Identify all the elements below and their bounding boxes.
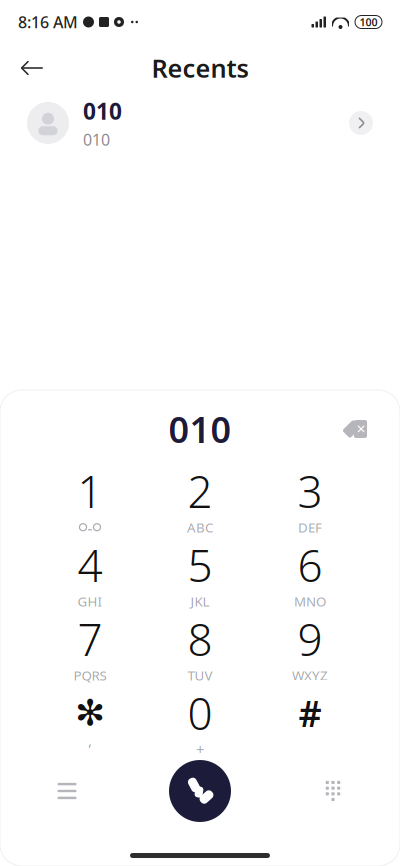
button[interactable]: 5 — [145, 534, 255, 608]
button[interactable]: 1 — [35, 460, 145, 534]
staticText: ABC — [187, 518, 213, 536]
button[interactable]: 4 — [35, 534, 145, 608]
staticText: 4 — [77, 536, 102, 594]
button[interactable]: 9 — [255, 608, 365, 682]
staticText: 6 — [297, 536, 322, 594]
staticText: 100 — [359, 15, 377, 29]
button[interactable]: 3 — [255, 460, 365, 534]
staticText: 010 — [83, 129, 110, 150]
staticText: # — [298, 689, 321, 737]
staticText: GHI — [77, 592, 102, 610]
staticText: ✻ — [75, 693, 105, 733]
staticText: TUV — [187, 666, 212, 684]
staticText: 9 — [297, 610, 322, 668]
button[interactable]: 6 — [255, 534, 365, 608]
staticText: + — [196, 739, 204, 759]
button[interactable]: Delete — [336, 409, 380, 449]
button[interactable]: # — [255, 682, 365, 756]
staticText: JKL — [190, 592, 209, 610]
staticText: PQRS — [73, 666, 106, 684]
staticText: 1 — [77, 462, 102, 520]
staticText: 010 — [83, 96, 122, 126]
staticText: WXYZ — [292, 666, 328, 684]
staticText: 0 — [187, 684, 212, 742]
button[interactable]: Back — [10, 46, 54, 90]
staticText: 5 — [187, 536, 212, 594]
staticText: 8:16 AM — [18, 11, 78, 33]
staticText: , — [88, 731, 92, 750]
button[interactable]: Call — [167, 758, 233, 824]
button[interactable]: Call log options — [32, 758, 102, 824]
staticText: MNO — [294, 592, 326, 610]
button[interactable]: 2 — [145, 460, 255, 534]
staticText: DEF — [298, 518, 322, 536]
staticText: ✕ — [356, 422, 366, 436]
staticText: 7 — [77, 610, 102, 668]
staticText: 010 — [168, 405, 231, 453]
button[interactable]: 7 — [35, 608, 145, 682]
staticText: Recents — [151, 51, 248, 85]
button[interactable]: 0 — [145, 682, 255, 756]
staticText: 8 — [187, 610, 212, 668]
staticText: 2 — [187, 462, 212, 520]
button[interactable]: ✻ — [35, 682, 145, 756]
button[interactable]: 8 — [145, 608, 255, 682]
staticText: 3 — [297, 462, 322, 520]
button[interactable]: Hide keypad — [298, 758, 368, 824]
button[interactable]: 010 — [0, 92, 400, 154]
